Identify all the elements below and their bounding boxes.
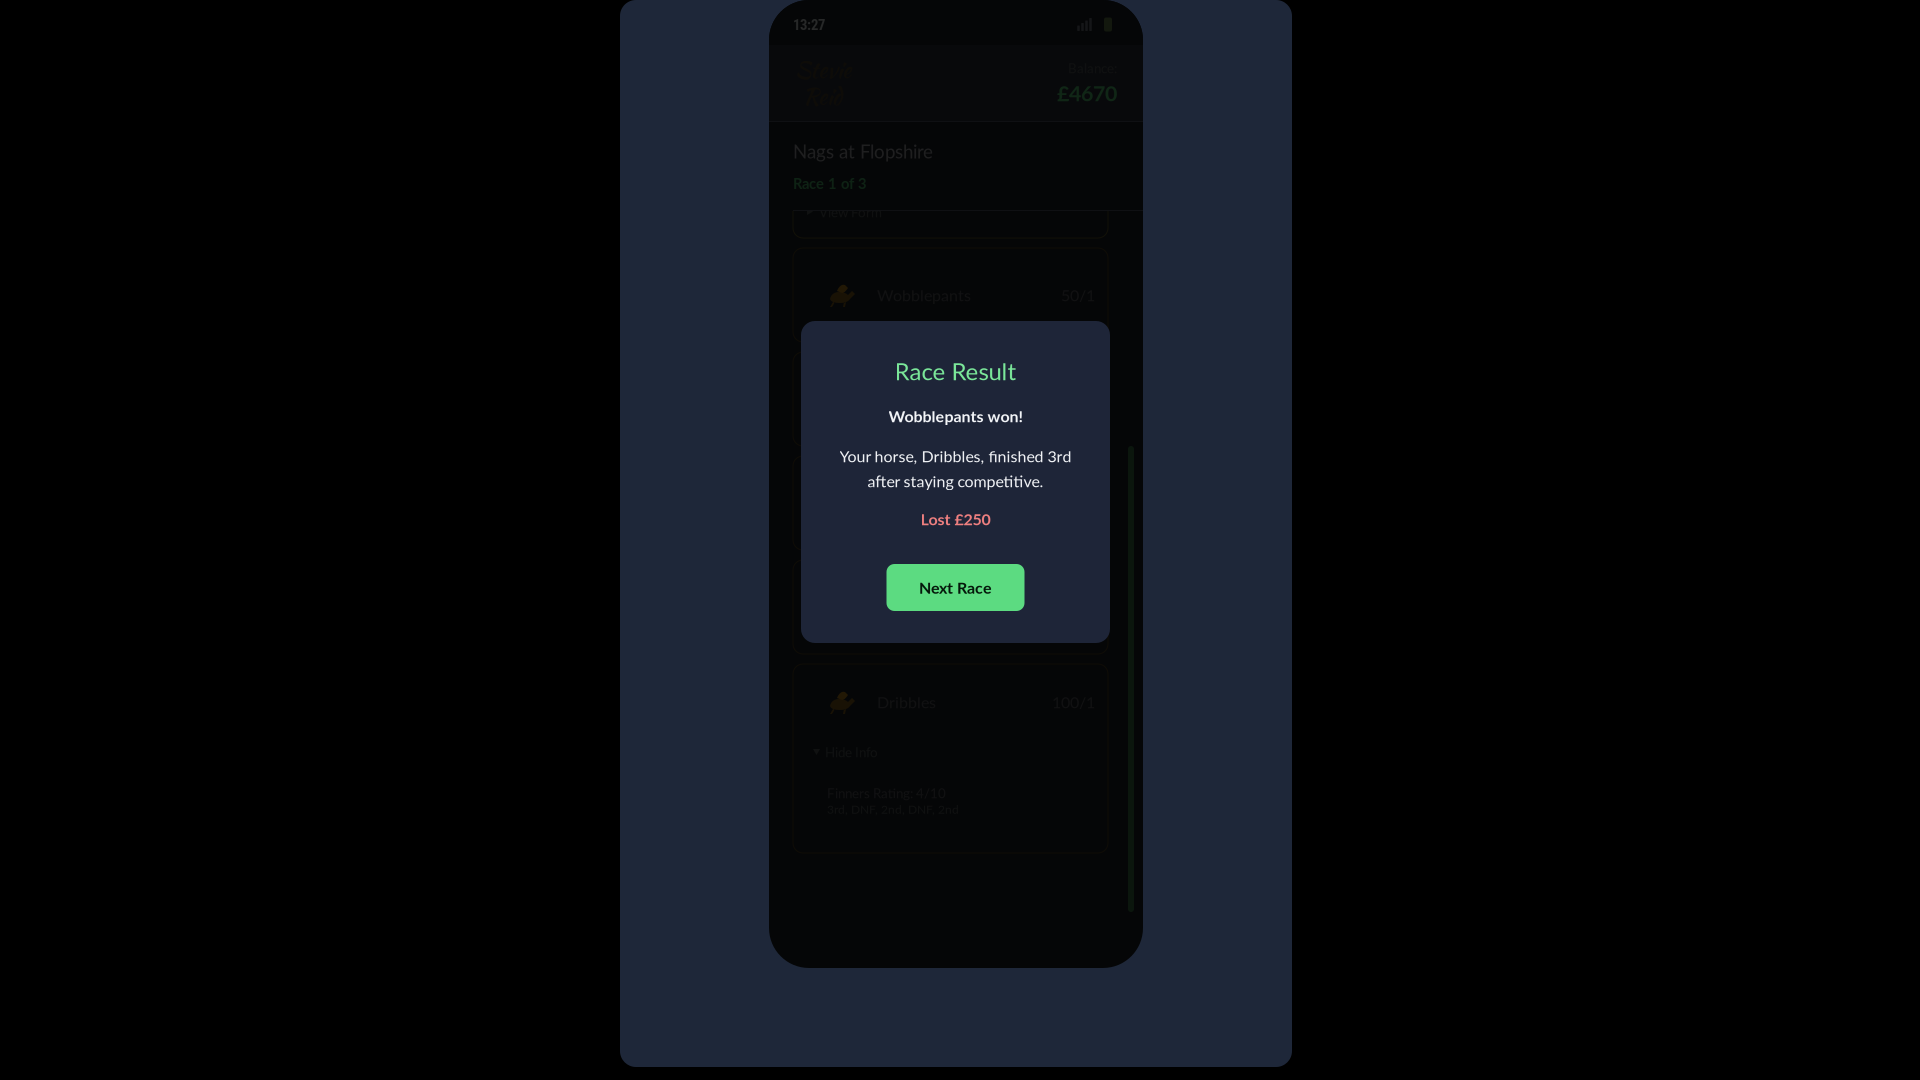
staticText: Dribbles [877, 692, 936, 712]
staticText: 13:27 [793, 16, 825, 34]
staticText: 50/1 [1061, 285, 1095, 305]
staticText: Lost £250 [920, 509, 990, 529]
staticText: Your horse, Dribbles, finished 3rd [839, 446, 1071, 466]
staticText: 100/1 [1052, 692, 1095, 712]
staticText: £4670 [1057, 80, 1117, 106]
staticText: 3rd, DNF, 2nd, DNF, 2nd [827, 802, 959, 816]
staticText: Race 1 of 3 [793, 174, 867, 192]
button[interactable]: Trundle [793, 352, 1108, 446]
staticText: Hide Info [825, 744, 878, 760]
staticText: Mr Nibbles [877, 597, 954, 617]
button[interactable]: Clompy Sue [793, 456, 1108, 550]
staticText: Wobblepants won! [888, 406, 1022, 426]
staticText: after staying competitive. [867, 471, 1043, 491]
staticText: Next Race [919, 578, 992, 597]
button[interactable]: Dribbles [793, 689, 1108, 715]
button[interactable]: Mr Nibbles [793, 560, 1108, 654]
button[interactable]: Next Race [886, 564, 1024, 611]
staticText: View Form [819, 204, 882, 220]
staticText: Nags at Flopshire [793, 140, 933, 162]
staticText: Wobblepants [877, 285, 971, 305]
staticText: Finners Rating: 4/10 [827, 785, 946, 801]
staticText: Race Result [894, 357, 1016, 385]
button[interactable]: Wobblepants [793, 248, 1108, 342]
